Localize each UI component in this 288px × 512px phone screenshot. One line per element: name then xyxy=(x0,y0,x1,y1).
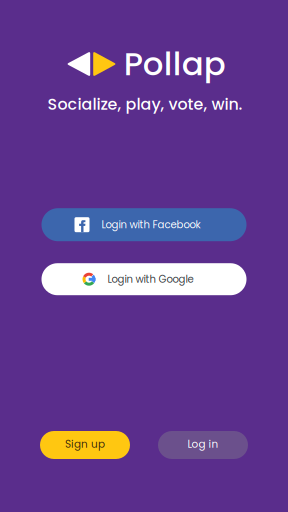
button[interactable]: Login with Google xyxy=(41,263,246,295)
staticText: Login with Google xyxy=(107,272,193,286)
staticText: Log in xyxy=(187,437,218,451)
staticText: Login with Facebook xyxy=(101,218,200,232)
staticText: Pollap xyxy=(124,41,226,87)
staticText: Socialize, play, vote, win. xyxy=(47,93,242,115)
button[interactable]: Login with Facebook xyxy=(41,208,246,241)
button[interactable]: Sign up xyxy=(40,431,130,459)
staticText: Sign up xyxy=(65,437,105,451)
button[interactable]: Log in xyxy=(158,431,248,459)
